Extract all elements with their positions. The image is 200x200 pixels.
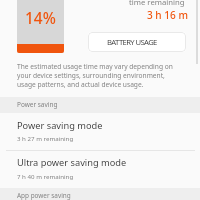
button[interactable]: BATTERY USAGE [88,32,186,52]
button[interactable] [0,113,200,151]
staticText: Power saving mode [17,119,103,132]
staticText: The estimated usage time may vary depend… [17,62,197,89]
staticText: 3 h 27 m remaining [17,134,74,142]
staticText: BATTERY USAGE [107,37,157,47]
staticText: 3 h 16 m [147,8,188,22]
staticText: App power saving [17,191,71,200]
staticText: Power saving [17,100,58,109]
staticText: Ultra power saving mode [17,156,127,169]
staticText: time remaining [129,0,185,8]
staticText: 7 h 40 m remaining [17,172,74,180]
staticText: 14% [25,7,56,28]
button[interactable] [0,150,200,188]
